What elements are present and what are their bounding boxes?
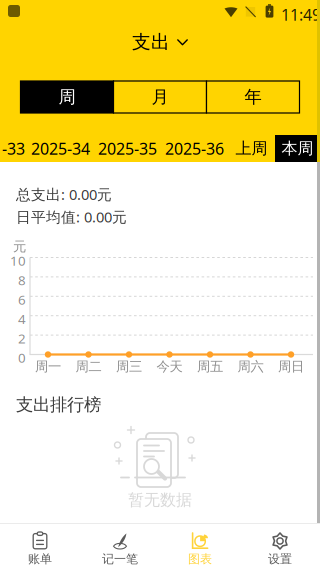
staticText: 周二 (75, 358, 101, 375)
button[interactable]: -33 (0, 135, 27, 162)
staticText: 8 (18, 271, 26, 289)
staticText: 今天 (156, 358, 182, 375)
staticText: 2 (18, 329, 26, 347)
staticText: 2025-34 (31, 138, 90, 159)
staticText: 年 (244, 86, 261, 108)
button[interactable]: 2025-35 (94, 135, 161, 162)
button[interactable]: 账单 (0, 523, 80, 568)
staticText: 2025-36 (165, 138, 224, 159)
staticText: 本周 (281, 139, 313, 158)
staticText: 11:49 (281, 4, 320, 25)
staticText: 日平均值: 0.00元 (16, 207, 127, 226)
staticText: 设置 (268, 552, 292, 566)
staticText: 4 (18, 310, 26, 328)
staticText: 账单 (28, 552, 52, 566)
staticText: 周五 (197, 358, 223, 375)
button[interactable]: 月 (113, 81, 206, 113)
staticText: 支出 (132, 30, 170, 53)
staticText: 6 (18, 291, 26, 308)
button[interactable]: 支出 (0, 33, 320, 51)
button[interactable]: 周 (20, 81, 113, 113)
button[interactable]: 设置 (240, 523, 320, 568)
staticText: -33 (2, 138, 25, 159)
staticText: 上周 (235, 139, 267, 158)
staticText: 0 (18, 349, 26, 366)
button[interactable]: 图表 (160, 523, 240, 568)
staticText: 10 (10, 252, 26, 269)
button[interactable]: 年 (206, 81, 299, 113)
staticText: 支出排行榜 (16, 394, 101, 415)
staticText: 图表 (188, 552, 212, 566)
button[interactable]: 记一笔 (80, 523, 160, 568)
button[interactable]: 2025-36 (161, 135, 228, 162)
staticText: 周六 (237, 358, 263, 375)
staticText: 记一笔 (102, 552, 138, 566)
staticText: 周三 (116, 358, 142, 375)
staticText: 暂无数据 (128, 490, 192, 510)
staticText: 周日 (278, 358, 304, 375)
button[interactable]: 2025-34 (27, 135, 94, 162)
staticText: 元 (13, 238, 26, 255)
staticText: 月 (151, 86, 168, 108)
staticText: 周一 (35, 358, 61, 375)
button[interactable]: 本周 (275, 135, 320, 162)
button[interactable]: 上周 (228, 135, 275, 162)
staticText: 周 (58, 86, 75, 108)
staticText: 总支出: 0.00元 (16, 184, 112, 204)
staticText: 2025-35 (98, 138, 157, 159)
